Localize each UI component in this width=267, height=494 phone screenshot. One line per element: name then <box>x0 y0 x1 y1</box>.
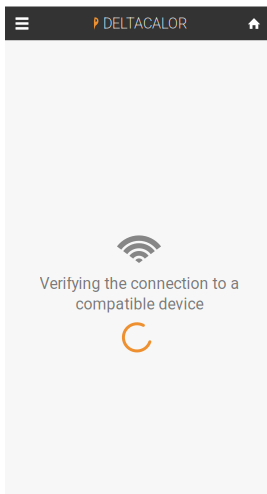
staticText: Verifying the connection to a <box>39 274 239 293</box>
button[interactable]: Home <box>241 6 267 40</box>
button[interactable]: Menu <box>7 6 37 40</box>
staticText: DELTACALOR <box>103 15 187 32</box>
staticText: compatible device <box>75 295 203 313</box>
